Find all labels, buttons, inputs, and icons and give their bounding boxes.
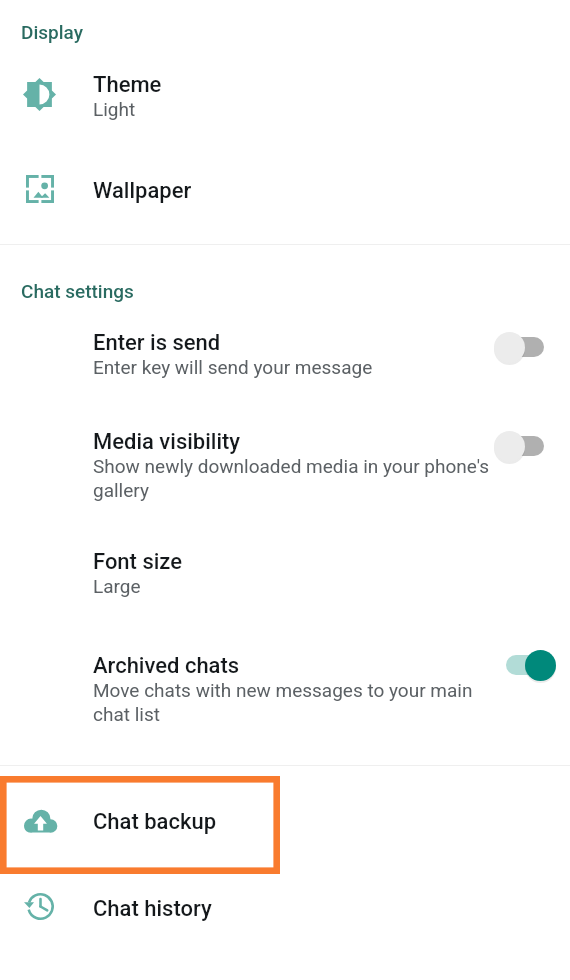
other: Wallpaper xyxy=(26,175,54,203)
button[interactable]: Switch, on xyxy=(496,644,558,686)
staticText: Wallpaper xyxy=(93,178,192,204)
staticText: Font size xyxy=(93,549,183,575)
button[interactable]: Wallpaper xyxy=(0,164,570,228)
staticText: Light xyxy=(93,98,136,120)
staticText: Chat settings xyxy=(21,280,134,302)
staticText: Theme xyxy=(93,72,162,98)
button[interactable]: Theme xyxy=(0,64,570,140)
button[interactable]: Enter is send xyxy=(0,325,570,389)
other: Theme xyxy=(23,78,56,111)
button[interactable]: Media visibility xyxy=(0,424,570,508)
staticText: Show newly downloaded media in your phon… xyxy=(93,455,491,502)
staticText: Large xyxy=(93,575,141,597)
staticText: Move chats with new messages to your mai… xyxy=(93,679,483,726)
staticText: Enter is send xyxy=(93,330,221,356)
button[interactable]: Switch, off xyxy=(496,326,558,368)
other: Chat backup xyxy=(24,807,57,840)
button[interactable]: Chat history xyxy=(0,880,570,944)
other: Chat history xyxy=(27,893,54,920)
button[interactable]: Font size xyxy=(0,544,570,608)
staticText: Chat backup xyxy=(93,809,217,835)
button[interactable]: Chat backup xyxy=(0,775,570,873)
button[interactable]: Archived chats xyxy=(0,648,570,732)
staticText: Display xyxy=(21,21,83,43)
staticText: Enter key will send your message xyxy=(93,356,373,378)
button[interactable]: Switch, off xyxy=(496,425,558,467)
staticText: Archived chats xyxy=(93,653,240,679)
staticText: Chat history xyxy=(93,896,212,922)
staticText: Media visibility xyxy=(93,429,241,455)
